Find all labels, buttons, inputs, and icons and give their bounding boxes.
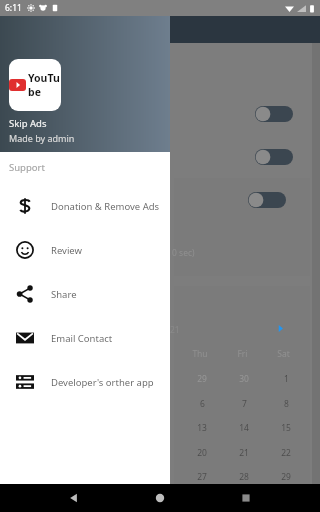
button[interactable]: 1: [278, 373, 294, 385]
button[interactable]: Donation & Remove Ads: [0, 184, 170, 228]
button[interactable]: Review: [0, 228, 170, 272]
staticText: 21: [170, 324, 180, 336]
staticText: Review: [51, 244, 82, 257]
staticText: 28: [239, 471, 249, 483]
button[interactable]: Toggle: [255, 104, 293, 124]
staticText: 30: [239, 373, 249, 385]
staticText: 7: [242, 398, 247, 410]
button[interactable]: Sat: [275, 348, 291, 360]
button[interactable]: Next month: [277, 325, 284, 332]
button[interactable]: Toggle: [248, 190, 286, 210]
button[interactable]: 7: [236, 398, 252, 410]
button[interactable]: Developer's orther app: [0, 360, 170, 404]
staticText: Skip Ads: [9, 117, 47, 130]
button[interactable]: 21: [236, 447, 252, 459]
staticText: 6: [200, 398, 205, 410]
staticText: YouTube: [28, 71, 61, 99]
staticText: Share: [51, 288, 77, 301]
button[interactable]: Fri: [234, 348, 250, 360]
button[interactable]: 29: [278, 471, 294, 483]
button[interactable]: Share: [0, 272, 170, 316]
button[interactable]: 20: [194, 447, 210, 459]
staticText: 14: [239, 422, 249, 434]
button[interactable]: 13: [194, 422, 210, 434]
button[interactable]: Back: [62, 486, 86, 510]
button[interactable]: App icon: [9, 59, 61, 111]
staticText: Developer's orther app: [51, 376, 154, 389]
staticText: 29: [197, 373, 207, 385]
button[interactable]: Toggle: [255, 147, 293, 167]
button[interactable]: Home: [148, 486, 172, 510]
staticText: 22: [281, 447, 291, 459]
staticText: Sat: [277, 348, 290, 360]
staticText: Thu: [192, 348, 208, 360]
staticText: Support: [9, 161, 45, 174]
button[interactable]: 28: [236, 471, 252, 483]
button[interactable]: Recents: [234, 486, 258, 510]
button[interactable]: 30: [236, 373, 252, 385]
button[interactable]: 22: [278, 447, 294, 459]
staticText: 27: [197, 471, 207, 483]
staticText: 20: [197, 447, 207, 459]
button[interactable]: 8: [278, 398, 294, 410]
button[interactable]: Email Contact: [0, 316, 170, 360]
staticText: 8: [284, 398, 289, 410]
staticText: 15: [281, 422, 291, 434]
staticText: 6:11: [5, 2, 22, 14]
button[interactable]: 6: [194, 398, 210, 410]
staticText: 0 sec): [172, 247, 195, 259]
staticText: Donation & Remove Ads: [51, 200, 160, 213]
button[interactable]: 15: [278, 422, 294, 434]
staticText: Email Contact: [51, 332, 113, 345]
staticText: 21: [239, 447, 249, 459]
button[interactable]: 14: [236, 422, 252, 434]
button[interactable]: Thu: [192, 348, 208, 360]
staticText: 13: [197, 422, 207, 434]
staticText: 1: [284, 373, 289, 385]
button[interactable]: 29: [194, 373, 210, 385]
button[interactable]: 27: [194, 471, 210, 483]
staticText: Fri: [237, 348, 248, 360]
staticText: Made by admin: [9, 132, 75, 144]
staticText: 29: [281, 471, 291, 483]
